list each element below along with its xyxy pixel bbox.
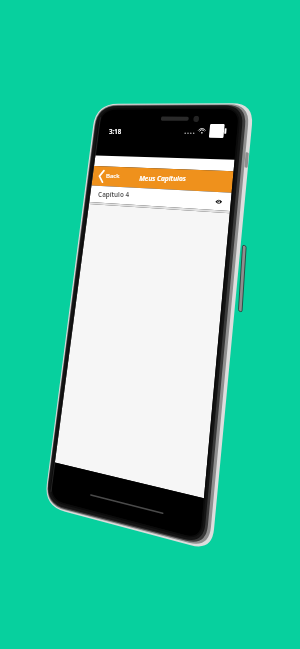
button[interactable]: Meus Capítulos screen [0,0,300,649]
